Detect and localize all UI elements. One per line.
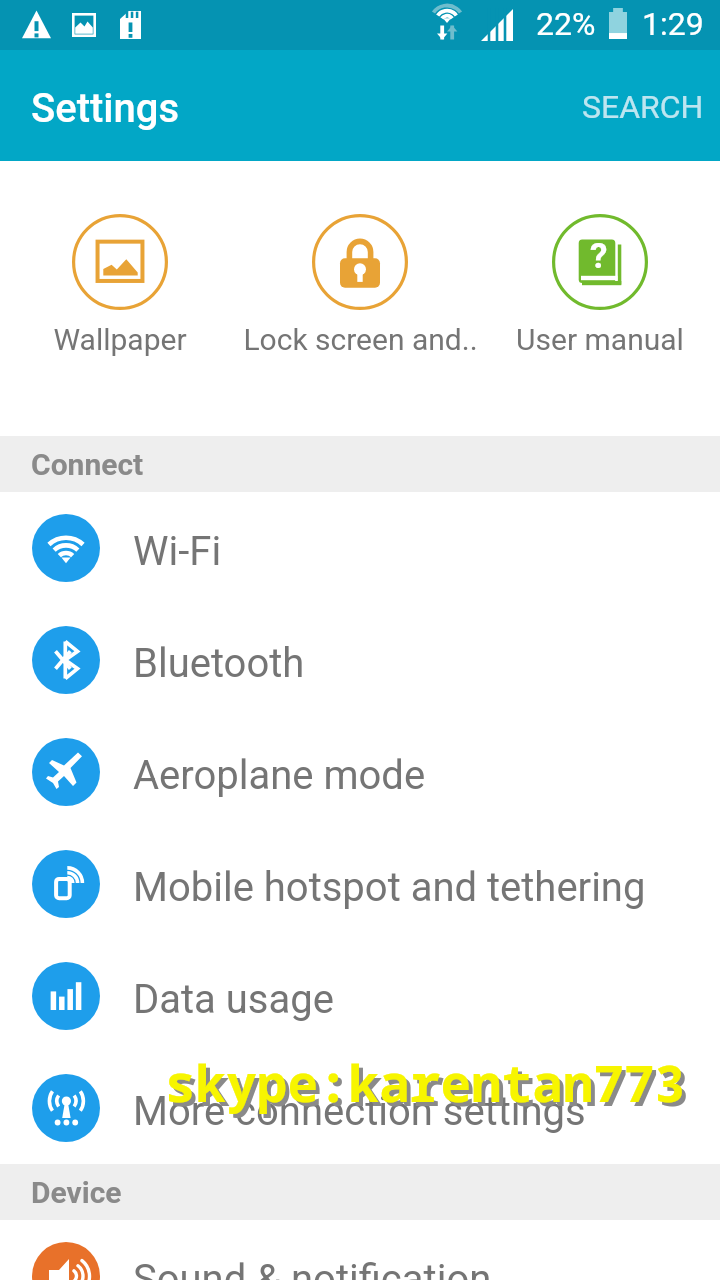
staticText: Wi-Fi xyxy=(133,528,222,575)
button[interactable]: Wi-Fi xyxy=(0,492,720,604)
button[interactable]: SEARCH xyxy=(562,62,720,150)
button[interactable]: More connection settings xyxy=(0,1052,720,1164)
button[interactable]: Data usage xyxy=(0,940,720,1052)
staticText: skype:karentan773 xyxy=(169,1051,690,1120)
button[interactable]: Lock screen and.. xyxy=(240,161,480,257)
staticText: Device xyxy=(31,1175,122,1210)
button[interactable]: Sound & notification xyxy=(0,1220,720,1280)
button[interactable]: Mobile hotspot and tethering xyxy=(0,828,720,940)
staticText: Sound & notification xyxy=(133,1256,492,1280)
staticText: ? xyxy=(590,236,608,277)
staticText: SEARCH xyxy=(582,88,704,126)
staticText: Data usage xyxy=(133,976,334,1023)
staticText: More connection settings xyxy=(133,1088,586,1135)
staticText: Connect xyxy=(31,447,144,482)
staticText: skype:karentan773 xyxy=(165,1047,686,1116)
staticText: Settings xyxy=(31,85,180,132)
staticText: 22% xyxy=(536,5,596,43)
button[interactable]: Wallpaper xyxy=(0,161,240,257)
staticText: 1:29 xyxy=(642,5,704,43)
staticText: Wallpaper xyxy=(53,322,187,357)
staticText: User manual xyxy=(516,322,684,357)
staticText: Aeroplane mode xyxy=(133,752,426,799)
button[interactable]: Aeroplane mode xyxy=(0,716,720,828)
button[interactable]: Bluetooth xyxy=(0,604,720,716)
staticText: Mobile hotspot and tethering xyxy=(133,864,646,911)
staticText: Lock screen and.. xyxy=(243,322,478,357)
staticText: Bluetooth xyxy=(133,640,305,687)
button[interactable]: ? xyxy=(480,161,720,257)
